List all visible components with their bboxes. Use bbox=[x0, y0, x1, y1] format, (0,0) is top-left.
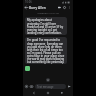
button[interactable]: Text message bbox=[35, 84, 66, 89]
button[interactable]: Back bbox=[24, 5, 29, 10]
button[interactable]: Camera bbox=[29, 84, 34, 89]
button[interactable]: Add bbox=[24, 84, 29, 89]
button[interactable]: Send bbox=[67, 84, 72, 89]
button[interactable]: Contact avatar bbox=[25, 66, 30, 71]
staticText: My apologies about yesterday. I'm still … bbox=[27, 18, 65, 34]
staticText: Barry Allen bbox=[29, 6, 46, 10]
button[interactable]: My apologies about yesterday. I'm still … bbox=[25, 17, 67, 35]
staticText: Text message bbox=[37, 85, 54, 89]
button[interactable]: Call bbox=[62, 5, 67, 10]
button[interactable]: Scroll to bottom bbox=[46, 78, 50, 82]
button[interactable]: More options bbox=[67, 5, 72, 10]
button[interactable]: Home bbox=[45, 90, 51, 96]
button[interactable]: Barry Allen bbox=[29, 4, 57, 11]
staticText: 10:06 bbox=[25, 0, 32, 4]
button[interactable]: Video call bbox=[57, 5, 62, 10]
button[interactable]: Recents bbox=[59, 90, 65, 96]
staticText: I'm good I've requested to drop everyone… bbox=[27, 38, 65, 63]
button[interactable]: Back bbox=[31, 90, 37, 96]
staticText: YESTERDAY 10:47 AM bbox=[25, 12, 71, 15]
button[interactable]: I'm good I've requested to drop everyone… bbox=[25, 37, 67, 64]
